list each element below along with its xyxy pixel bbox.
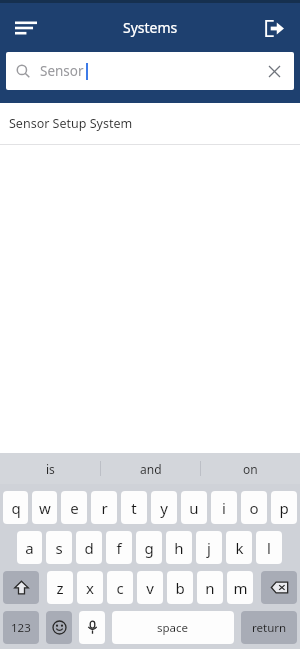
button[interactable]: space [112,611,234,644]
button[interactable]: Shift [3,571,39,604]
staticText: n [205,578,215,598]
button[interactable]: q [3,491,28,524]
staticText: on [243,461,258,477]
button[interactable]: g [136,531,162,564]
staticText: space [157,620,189,636]
staticText: u [189,498,199,518]
button[interactable]: z [47,571,73,604]
staticText: h [174,538,184,558]
button[interactable]: Menu [6,8,46,48]
button[interactable]: Clear [264,61,284,81]
button[interactable]: m [227,571,253,604]
button[interactable]: and [101,453,200,484]
staticText: v [146,578,154,598]
button[interactable]: Voice input [79,611,105,644]
button[interactable]: y [151,491,177,524]
button[interactable]: p [271,491,297,524]
staticText: l [267,538,271,558]
button[interactable]: u [181,491,207,524]
staticText: Sensor [40,62,84,80]
staticText: s [55,538,63,558]
staticText: w [39,498,51,518]
staticText: q [11,498,21,518]
staticText: f [116,538,122,558]
staticText: a [25,538,34,558]
staticText: Sensor Setup System [9,115,133,132]
staticText: j [207,538,211,558]
button[interactable]: Emoji [46,611,72,644]
button[interactable]: is [0,453,100,484]
button[interactable]: b [167,571,193,604]
button[interactable]: return [241,611,297,644]
staticText: and [140,461,162,477]
staticText: p [279,498,289,518]
button[interactable]: Sensor [6,52,294,90]
button[interactable]: Sensor Setup System [0,103,300,144]
staticText: i [222,498,226,518]
staticText: b [175,578,185,598]
staticText: x [86,578,94,598]
button[interactable]: 123 [3,611,39,644]
staticText: Systems [123,18,178,37]
button[interactable]: i [211,491,237,524]
button[interactable]: c [107,571,133,604]
staticText: k [235,538,244,558]
button[interactable]: Backspace [261,571,297,604]
staticText: o [249,498,259,518]
button[interactable]: on [201,453,300,484]
button[interactable]: x [77,571,103,604]
button[interactable]: e [61,491,87,524]
staticText: d [84,538,94,558]
button[interactable]: Log out [254,8,294,48]
staticText: y [160,498,168,518]
staticText: z [56,578,64,598]
staticText: 123 [11,620,31,636]
button[interactable]: a [17,531,42,564]
button[interactable]: l [256,531,282,564]
button[interactable]: t [121,491,147,524]
button[interactable]: s [46,531,72,564]
staticText: m [233,578,248,598]
button[interactable]: d [76,531,102,564]
button[interactable]: o [241,491,267,524]
button[interactable]: k [226,531,252,564]
staticText: is [46,461,55,477]
staticText: c [116,578,124,598]
button[interactable]: w [32,491,57,524]
staticText: r [101,498,108,518]
staticText: g [144,538,154,558]
staticText: e [70,498,79,518]
staticText: return [252,620,287,636]
staticText: t [131,498,137,518]
button[interactable]: v [137,571,163,604]
button[interactable]: r [91,491,117,524]
button[interactable]: h [166,531,192,564]
button[interactable]: f [106,531,132,564]
button[interactable]: n [197,571,223,604]
button[interactable]: j [196,531,222,564]
